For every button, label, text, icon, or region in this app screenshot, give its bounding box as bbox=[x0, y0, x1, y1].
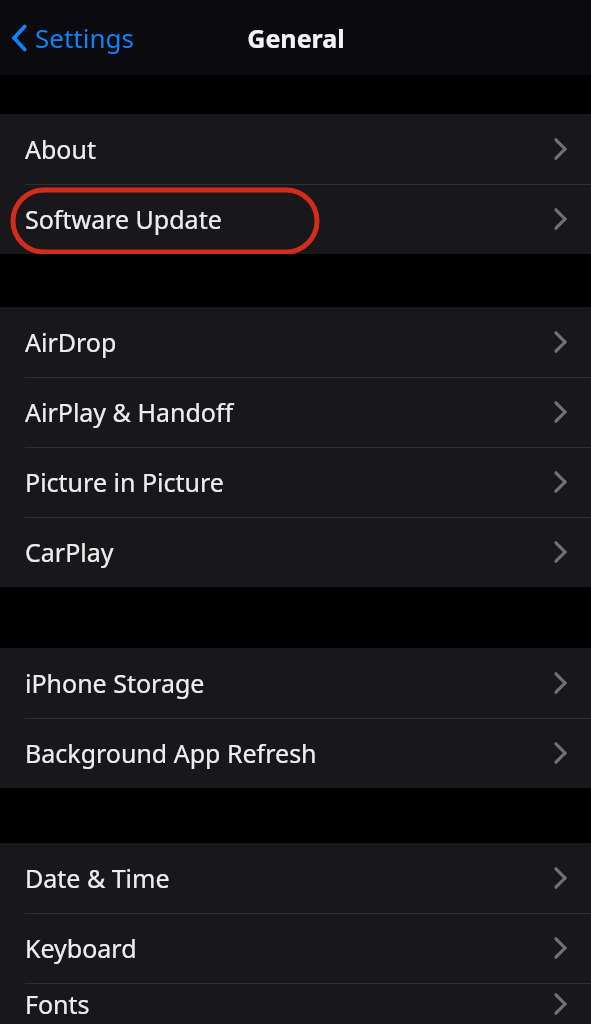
button[interactable]: Keyboard bbox=[0, 913, 591, 983]
button[interactable]: Picture in Picture bbox=[0, 447, 591, 517]
staticText: AirPlay & Handoff bbox=[25, 395, 234, 429]
staticText: Fonts bbox=[25, 987, 90, 1021]
staticText: Settings bbox=[35, 20, 134, 55]
button[interactable]: Date & Time bbox=[0, 843, 591, 913]
button[interactable]: Software Update bbox=[0, 184, 591, 254]
button[interactable]: AirDrop bbox=[0, 307, 591, 377]
button[interactable]: Fonts bbox=[0, 983, 591, 1024]
staticText: About bbox=[25, 132, 96, 166]
staticText: Software Update bbox=[25, 202, 222, 236]
button[interactable]: Back to Settings bbox=[6, 12, 140, 63]
staticText: AirDrop bbox=[25, 325, 117, 359]
staticText: CarPlay bbox=[25, 535, 114, 569]
button[interactable]: About bbox=[0, 114, 591, 184]
staticText: General bbox=[247, 21, 345, 55]
button[interactable]: AirPlay & Handoff bbox=[0, 377, 591, 447]
staticText: iPhone Storage bbox=[25, 666, 205, 700]
button[interactable]: iPhone Storage bbox=[0, 648, 591, 718]
button[interactable]: CarPlay bbox=[0, 517, 591, 587]
staticText: Keyboard bbox=[25, 931, 137, 965]
staticText: Date & Time bbox=[25, 861, 170, 895]
staticText: Picture in Picture bbox=[25, 465, 224, 499]
staticText: Background App Refresh bbox=[25, 736, 317, 770]
button[interactable]: Background App Refresh bbox=[0, 718, 591, 788]
